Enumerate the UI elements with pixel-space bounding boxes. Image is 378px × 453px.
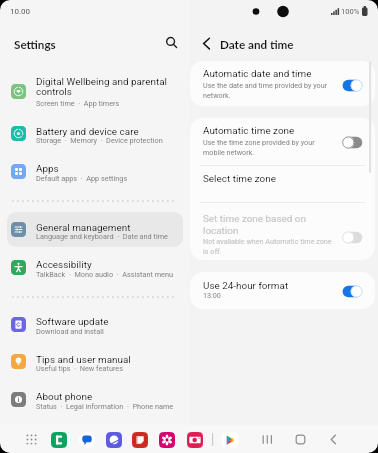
button[interactable]: Gallery: [159, 432, 175, 448]
staticText: Date and time: [220, 37, 294, 51]
staticText: Useful tips · New features: [36, 363, 124, 374]
staticText: 100%: [341, 6, 360, 17]
button[interactable]: Apps: [24, 432, 39, 447]
staticText: Default apps · App settings: [36, 173, 128, 184]
staticText: network.: [203, 90, 231, 101]
staticText: Use the time zone provided by your: [203, 137, 315, 148]
button[interactable]: [7, 382, 183, 417]
button[interactable]: Internet: [106, 432, 122, 448]
staticText: Software update: [36, 315, 109, 330]
button[interactable]: Samsung Notes: [132, 432, 148, 448]
staticText: Not available when Automatic time zone: [203, 236, 332, 247]
staticText: Use 24-hour format: [203, 279, 289, 294]
button[interactable]: Messages: [79, 432, 95, 448]
staticText: is off.: [203, 246, 222, 257]
button[interactable]: Back: [326, 432, 341, 447]
staticText: Digital Wellbeing and parental: [36, 75, 167, 90]
button[interactable]: Phone: [51, 432, 67, 448]
staticText: Set time zone based on: [203, 212, 306, 227]
staticText: About phone: [36, 390, 93, 405]
staticText: 13:00: [203, 290, 221, 301]
button[interactable]: Search: [160, 31, 182, 53]
staticText: controls: [36, 85, 72, 100]
staticText: TalkBack · Mono audio · Assistant menu: [36, 269, 174, 280]
staticText: Use the date and time provided by your: [203, 80, 328, 91]
button[interactable]: [7, 250, 183, 285]
button[interactable]: Toggle off: [341, 230, 365, 245]
button[interactable]: Home: [293, 432, 308, 447]
button[interactable]: [7, 307, 183, 342]
staticText: Screen time · App timers: [36, 98, 120, 109]
staticText: Automatic time zone: [203, 124, 295, 139]
staticText: Download and install: [36, 326, 104, 337]
staticText: General management: [36, 221, 131, 236]
button[interactable]: Play Store: [222, 432, 238, 448]
button[interactable]: Toggle on: [341, 284, 365, 299]
button[interactable]: [7, 74, 183, 109]
staticText: Apps: [36, 162, 59, 177]
button[interactable]: [7, 116, 183, 151]
button[interactable]: [7, 344, 183, 379]
button[interactable]: Toggle on: [341, 78, 365, 93]
staticText: Automatic date and time: [203, 67, 312, 82]
button[interactable]: [7, 154, 183, 189]
staticText: mobile network.: [203, 147, 255, 158]
button[interactable]: Toggle off: [341, 135, 365, 150]
button[interactable]: [7, 212, 183, 247]
staticText: location: [203, 224, 239, 239]
staticText: 10.00: [10, 6, 31, 18]
button[interactable]: Back: [199, 33, 220, 54]
button[interactable]: Recents: [260, 432, 275, 447]
staticText: Select time zone: [203, 172, 276, 187]
button[interactable]: Camera: [187, 432, 203, 448]
staticText: Storage · Memory · Device protection: [36, 135, 163, 146]
staticText: Accessibility: [36, 258, 92, 273]
staticText: Language and keyboard · Date and time: [36, 231, 168, 242]
staticText: Status · Legal information · Phone name: [36, 401, 174, 412]
staticText: Settings: [14, 37, 56, 51]
staticText: Battery and device care: [36, 125, 139, 140]
staticText: Tips and user manual: [36, 353, 131, 368]
